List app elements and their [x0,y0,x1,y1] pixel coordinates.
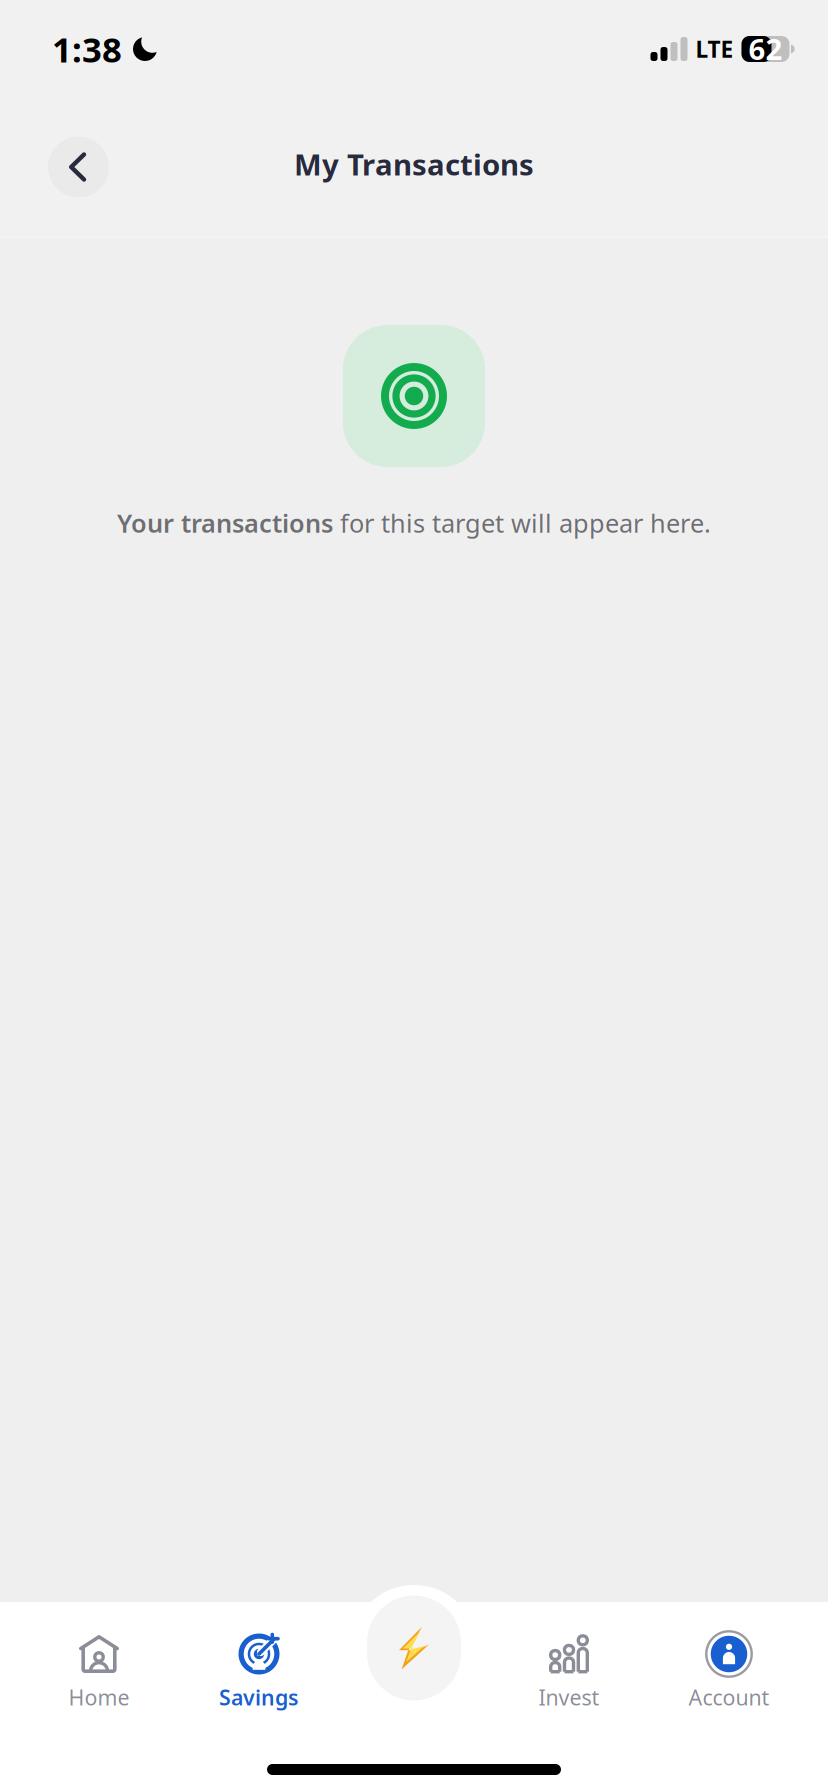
button[interactable]: Quick actions [351,1585,477,1711]
button[interactable]: Savings [179,1602,339,1722]
button[interactable]: Back [48,136,109,197]
button[interactable]: Home [19,1602,179,1722]
staticText: LTE [695,34,733,64]
staticText: Invest [538,1683,599,1711]
staticText: 1:38 [52,26,122,72]
staticText: Savings [219,1683,299,1711]
staticText: 62 [748,29,782,68]
staticText: Your transactions for this target will a… [117,506,711,540]
staticText: My Transactions [294,144,534,183]
button[interactable]: Account [649,1602,809,1722]
staticText: Home [68,1683,129,1711]
staticText: Account [688,1683,769,1711]
button[interactable]: Invest [489,1602,649,1722]
